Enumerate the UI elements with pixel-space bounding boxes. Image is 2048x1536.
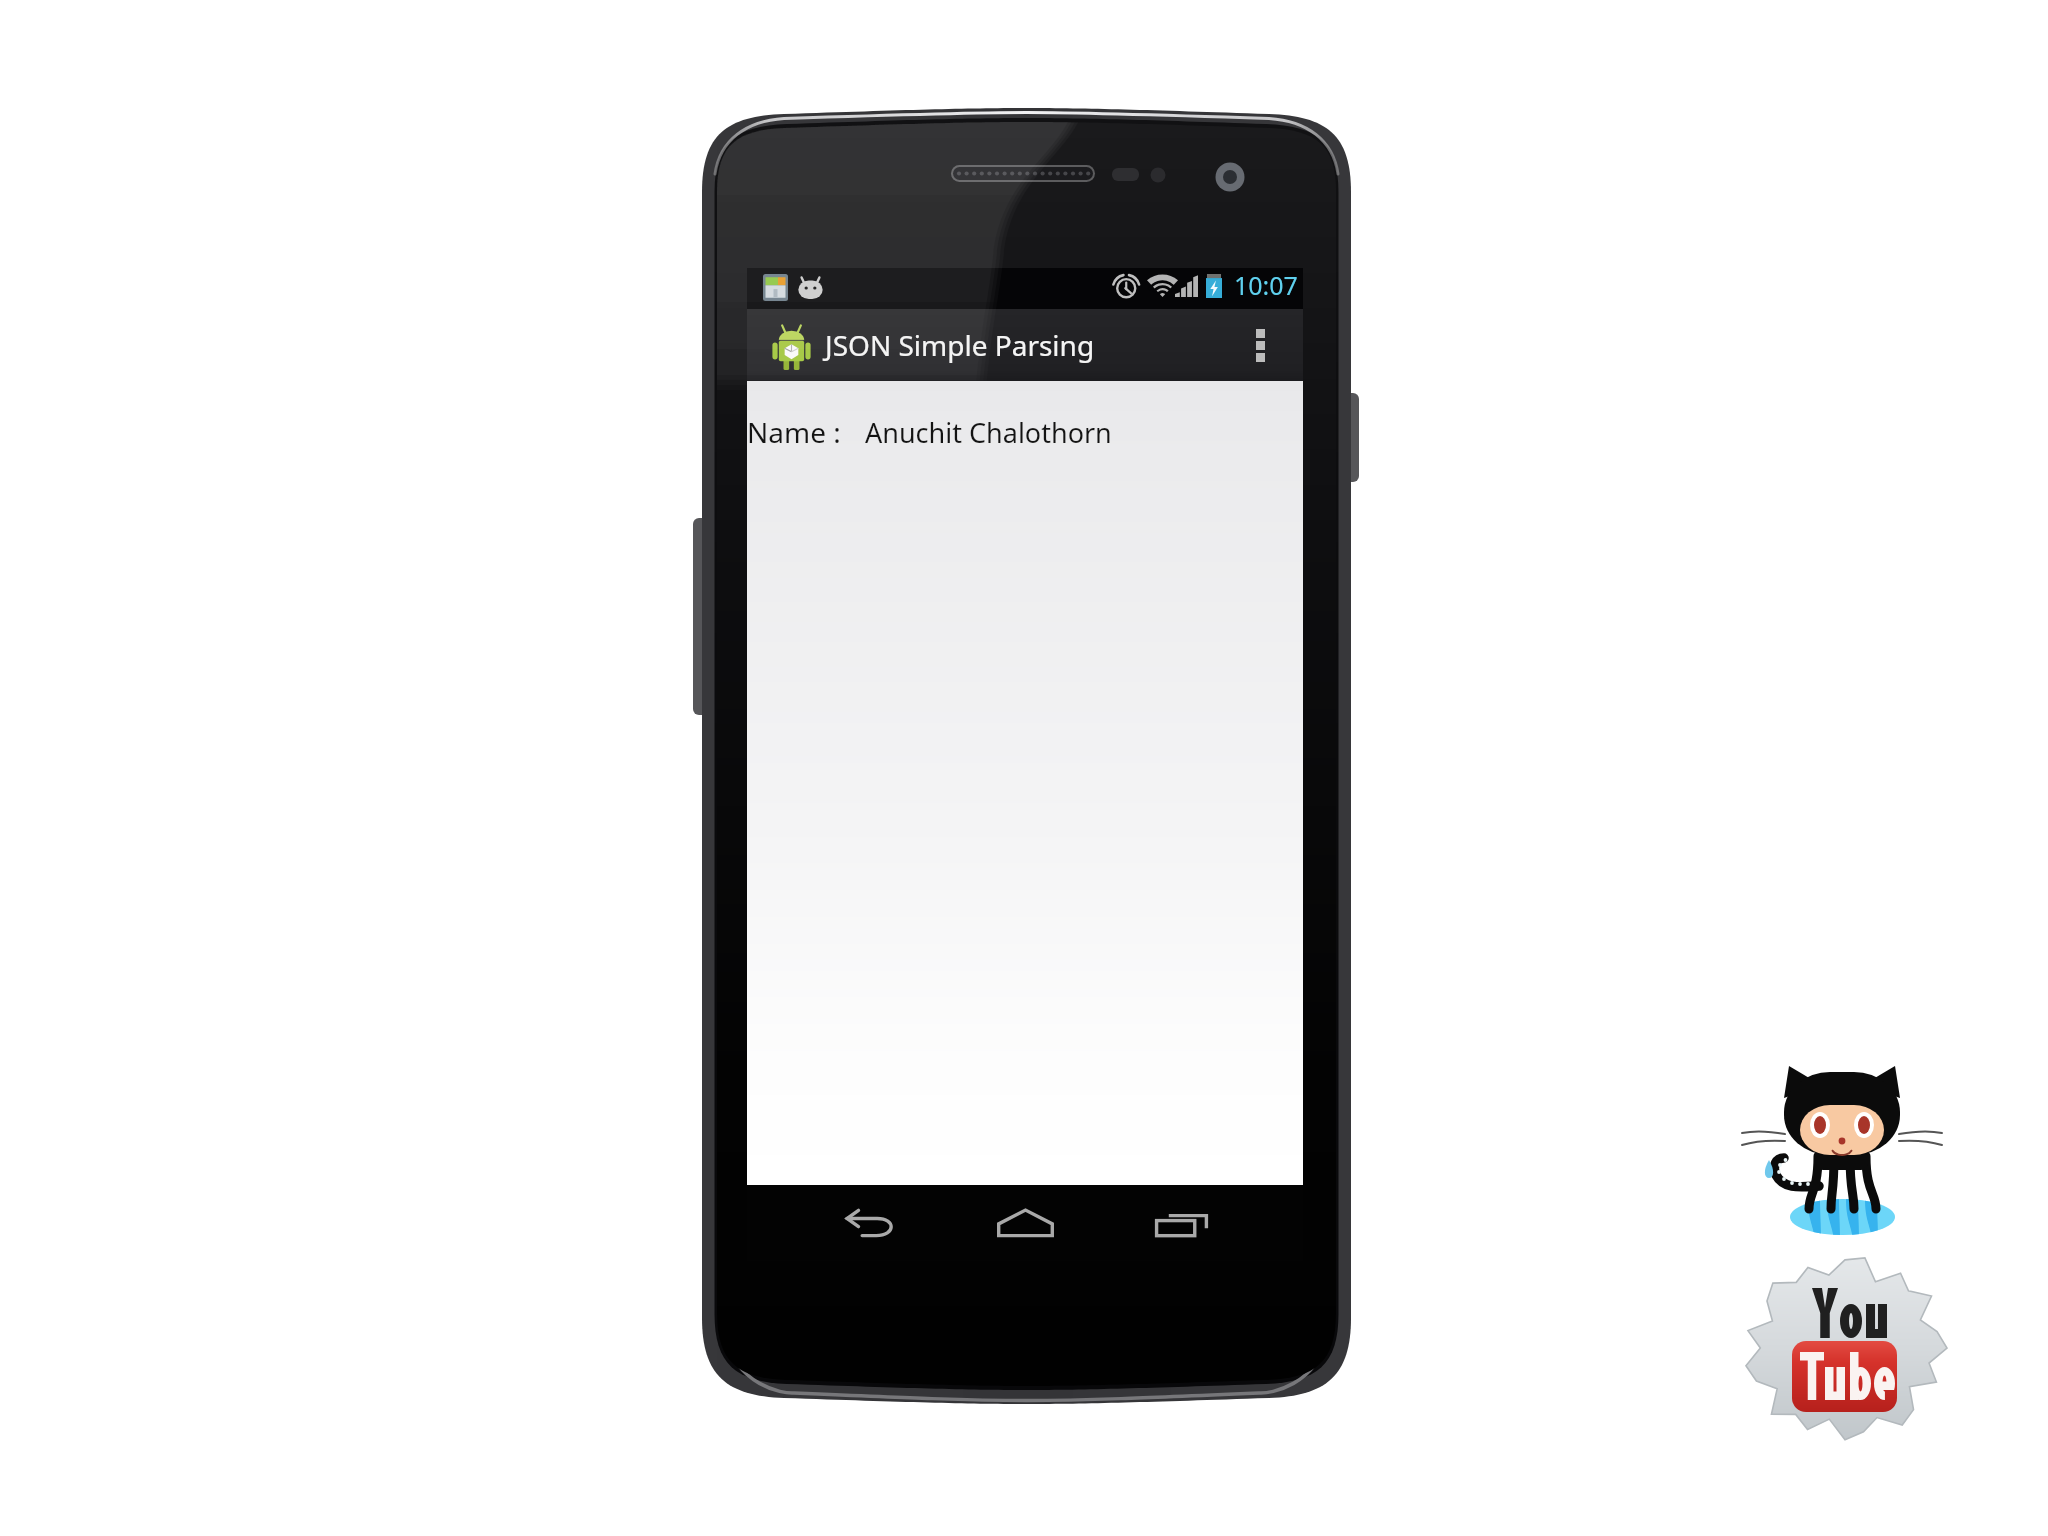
- staticText: Anuchit Chalothorn: [865, 414, 1112, 451]
- staticText: JSON Simple Parsing: [825, 326, 1095, 364]
- button[interactable]: Status bar, 10:07: [747, 268, 1303, 309]
- button[interactable]: More options: [1236, 309, 1284, 381]
- staticText: 10:07: [1234, 268, 1298, 302]
- button[interactable]: Back: [829, 1185, 913, 1261]
- button[interactable]: Recent apps: [1139, 1185, 1223, 1261]
- button[interactable]: Home: [983, 1185, 1067, 1261]
- button[interactable]: Name :: [747, 406, 1303, 458]
- staticText: Name :: [747, 413, 841, 451]
